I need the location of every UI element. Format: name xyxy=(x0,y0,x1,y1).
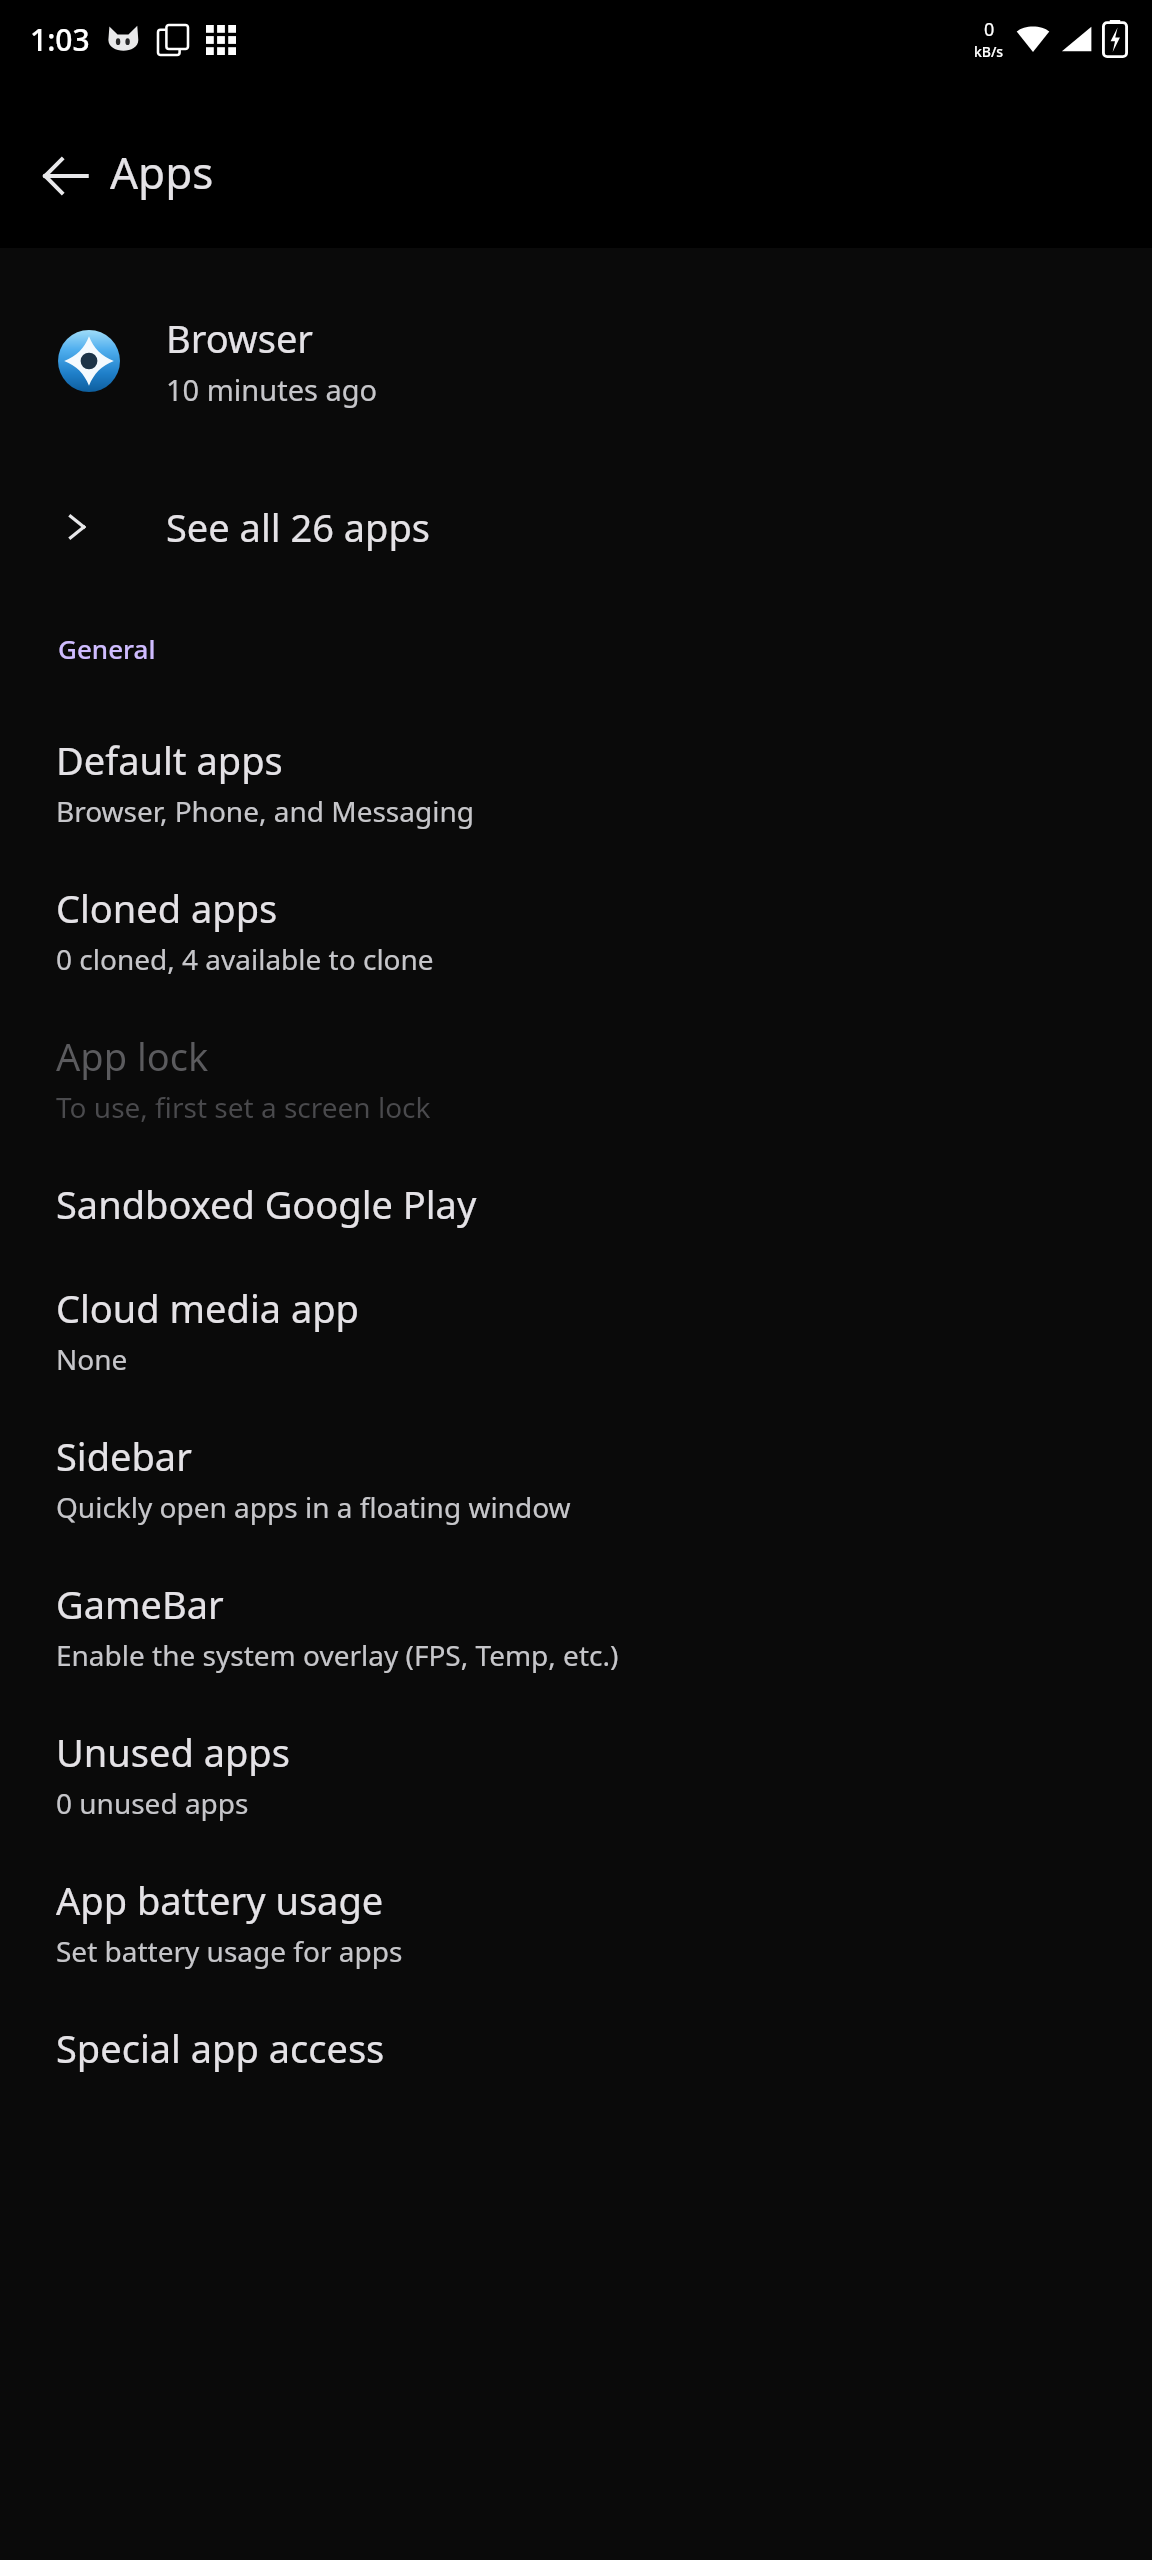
staticText: 0 cloned, 4 available to clone xyxy=(56,940,434,978)
staticText: Quickly open apps in a floating window xyxy=(56,1488,571,1526)
staticText: App battery usage xyxy=(56,1874,384,1926)
staticText: Default apps xyxy=(56,734,283,786)
staticText: GameBar xyxy=(56,1578,224,1630)
staticText: Set battery usage for apps xyxy=(56,1932,403,1970)
staticText: Sandboxed Google Play xyxy=(56,1178,477,1230)
staticText: Sidebar xyxy=(56,1430,192,1482)
button[interactable]: Back xyxy=(18,128,114,224)
button[interactable]: GameBar xyxy=(0,1552,1152,1700)
staticText: Cloud media app xyxy=(56,1282,359,1334)
button[interactable]: Cloud media app xyxy=(0,1256,1152,1404)
button[interactable]: Sandboxed Google Play xyxy=(0,1152,1152,1256)
staticText: Apps xyxy=(110,142,214,202)
button[interactable]: Unused apps xyxy=(0,1700,1152,1848)
staticText: To use, first set a screen lock xyxy=(56,1088,431,1126)
staticText: kB/s xyxy=(974,42,1004,61)
staticText: Cloned apps xyxy=(56,882,278,934)
staticText: Unused apps xyxy=(56,1726,290,1778)
staticText: App lock xyxy=(56,1030,209,1082)
staticText: 1:03 xyxy=(30,19,90,60)
staticText: See all 26 apps xyxy=(166,501,431,553)
staticText: General xyxy=(58,631,156,666)
staticText: 10 minutes ago xyxy=(166,370,378,409)
staticText: Browser xyxy=(166,312,314,364)
staticText: 0 unused apps xyxy=(56,1784,249,1822)
button[interactable]: Special app access xyxy=(0,1996,1152,2100)
button[interactable]: Cloned apps xyxy=(0,856,1152,1004)
button[interactable]: App battery usage xyxy=(0,1848,1152,1996)
button: App lock xyxy=(0,1004,1152,1152)
button[interactable]: Default apps xyxy=(0,708,1152,856)
button[interactable]: Browser xyxy=(0,298,1152,423)
staticText: Browser, Phone, and Messaging xyxy=(56,792,474,830)
staticText: None xyxy=(56,1340,128,1378)
button[interactable]: See all 26 apps xyxy=(0,483,1152,571)
staticText: 0 xyxy=(984,17,995,42)
staticText: Special app access xyxy=(56,2022,385,2074)
button[interactable]: Sidebar xyxy=(0,1404,1152,1552)
staticText: Enable the system overlay (FPS, Temp, et… xyxy=(56,1636,619,1674)
